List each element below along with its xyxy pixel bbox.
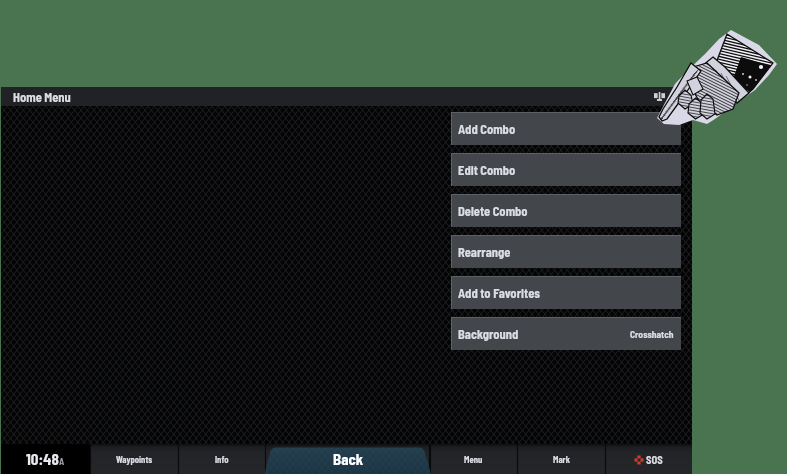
staticText: Add to Favorites: [458, 285, 540, 300]
staticText: Mark: [553, 454, 570, 464]
staticText: SOS: [646, 453, 663, 466]
staticText: Menu: [464, 454, 483, 464]
button[interactable]: Edit Combo: [451, 153, 681, 186]
staticText: Add Combo: [458, 121, 516, 136]
button[interactable]: Mark: [517, 444, 605, 474]
staticText: A: [59, 456, 65, 467]
button[interactable]: Add to Favorites: [451, 276, 681, 309]
staticText: Info: [215, 454, 229, 464]
button[interactable]: Rearrange: [451, 235, 681, 268]
button[interactable]: Delete Combo: [451, 194, 681, 227]
staticText: Background: [458, 326, 519, 341]
button[interactable]: Waypoints: [90, 444, 178, 474]
staticText: Delete Combo: [458, 203, 528, 218]
staticText: Rearrange: [458, 244, 511, 259]
staticText: Crosshatch: [630, 328, 674, 339]
staticText: Edit Combo: [458, 162, 516, 177]
staticText: Back: [333, 450, 364, 468]
staticText: 10:48: [26, 450, 59, 468]
button[interactable]: 10:48: [1, 444, 90, 474]
button[interactable]: GPS satellite status: [649, 90, 669, 103]
button[interactable]: Menu: [430, 444, 517, 474]
staticText: Home Menu: [13, 89, 71, 104]
button[interactable]: Background: [451, 317, 681, 350]
button[interactable]: Info: [178, 444, 265, 474]
button[interactable]: SOS: [605, 444, 692, 474]
button[interactable]: Back: [261, 444, 437, 474]
button[interactable]: Add Combo: [451, 112, 681, 145]
staticText: Waypoints: [116, 454, 153, 464]
